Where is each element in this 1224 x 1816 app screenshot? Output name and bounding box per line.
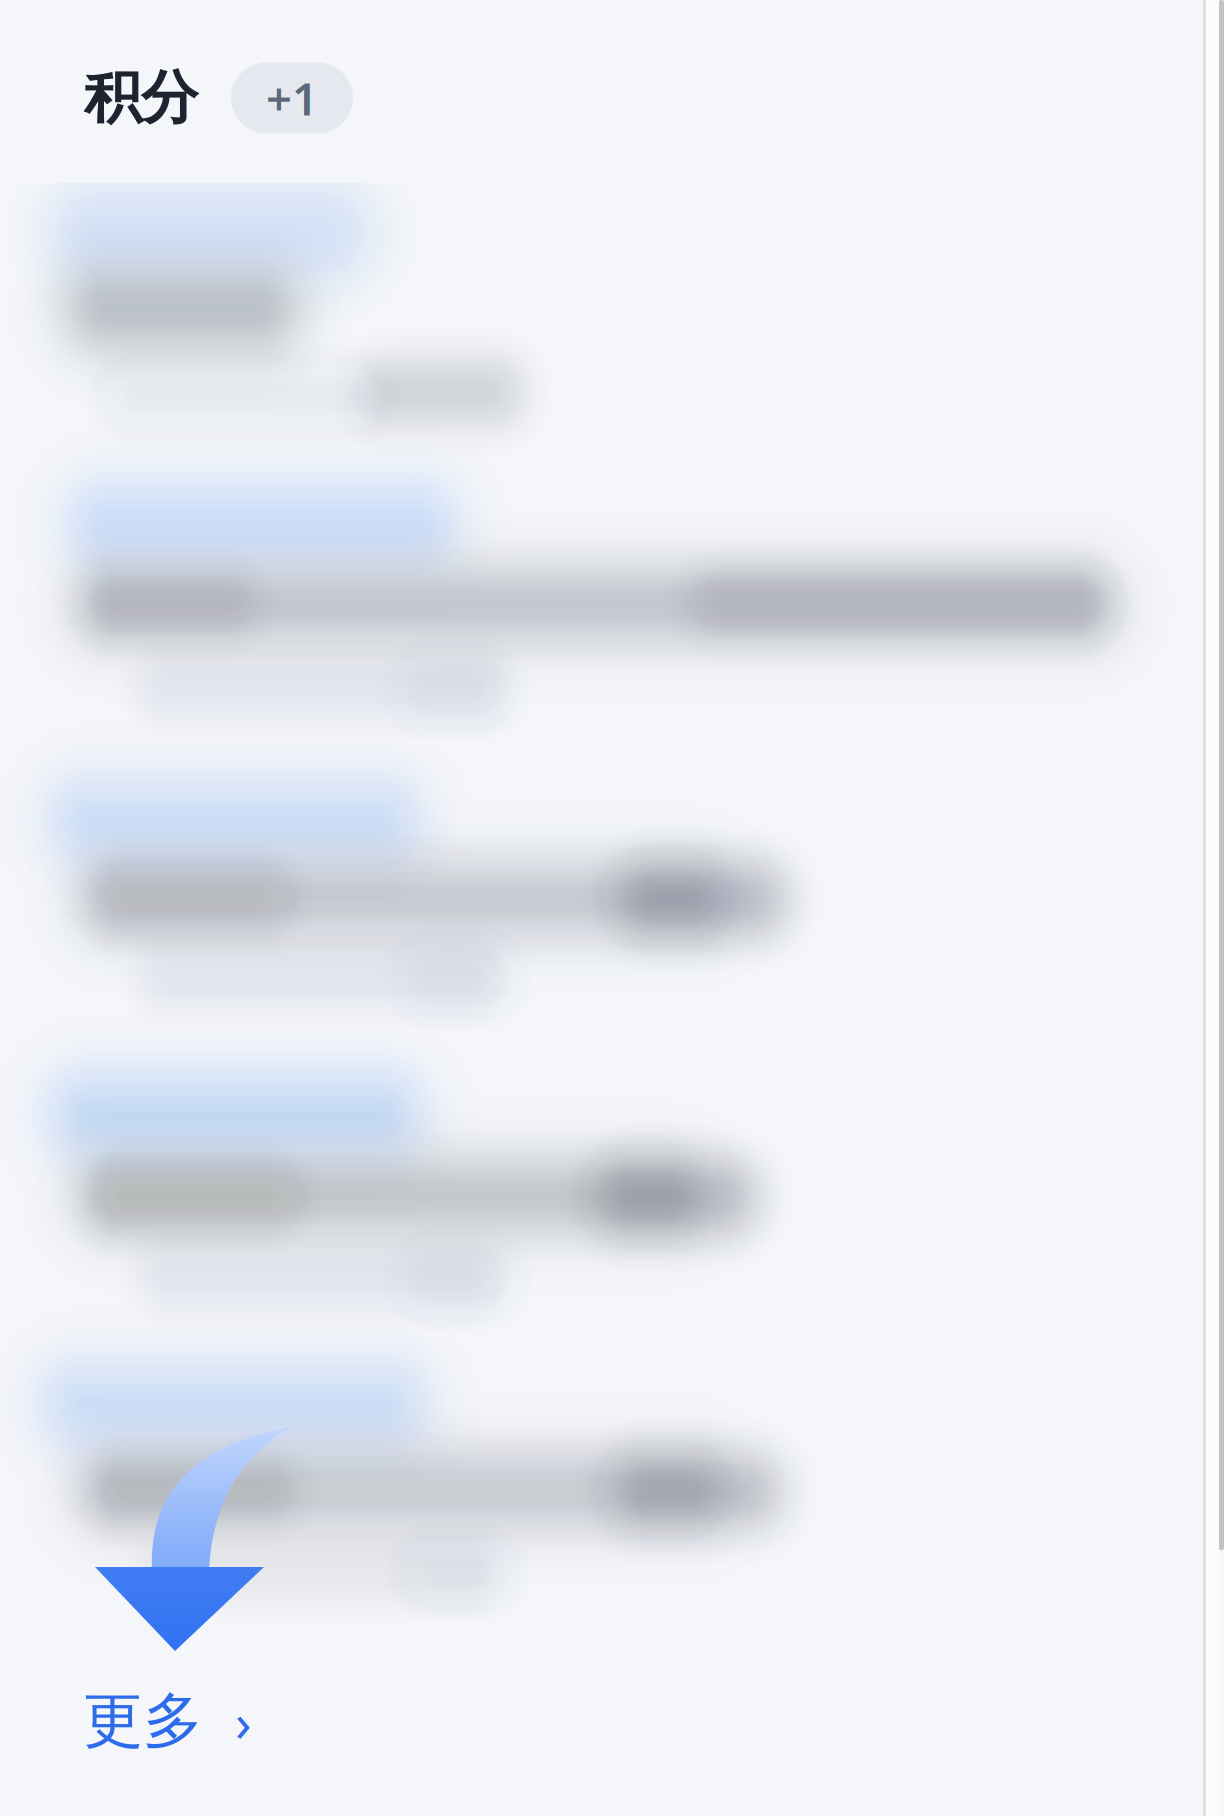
staticText: › <box>235 1686 252 1756</box>
staticText: 积分 <box>84 63 198 133</box>
button[interactable]: 更多 <box>83 1681 323 1761</box>
staticText: 更多 <box>83 1684 203 1758</box>
staticText: +1 <box>266 68 318 128</box>
